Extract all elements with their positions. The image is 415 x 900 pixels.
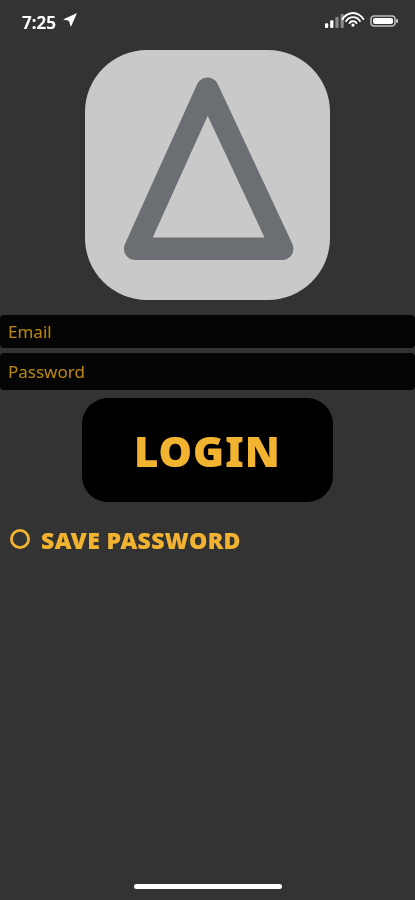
button[interactable]: LOGIN [82, 398, 333, 502]
button[interactable]: Password [0, 353, 415, 390]
staticText: Email [8, 320, 52, 343]
staticText: SAVE PASSWORD [41, 524, 241, 555]
button[interactable]: SAVE PASSWORD [6, 522, 251, 556]
staticText: Password [8, 360, 85, 383]
staticText: 7:25 [22, 11, 56, 34]
button[interactable]: Email [0, 315, 415, 348]
staticText: LOGIN [134, 422, 281, 479]
